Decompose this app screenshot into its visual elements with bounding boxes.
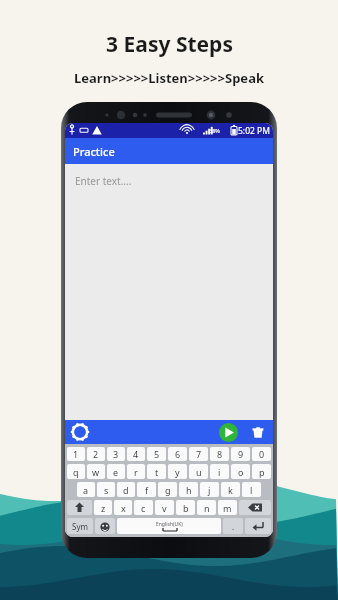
staticText: h <box>186 484 192 496</box>
button[interactable]: 7 <box>189 447 208 461</box>
staticText: 4 <box>133 448 139 460</box>
staticText: n <box>204 502 210 514</box>
staticText: a <box>83 484 89 496</box>
button[interactable]: l <box>242 482 261 497</box>
staticText: v <box>162 502 167 514</box>
staticText: g <box>165 484 171 496</box>
staticText: English(UK) <box>156 521 183 528</box>
button[interactable]: f <box>137 482 156 497</box>
button[interactable]: 5 <box>147 447 166 461</box>
button[interactable]: v <box>155 500 174 515</box>
button[interactable]: e <box>107 464 125 479</box>
button[interactable]: i <box>210 464 229 479</box>
staticText: o <box>238 466 244 478</box>
staticText: w <box>92 466 100 478</box>
staticText: 2 <box>93 448 99 460</box>
button[interactable]: 8 <box>210 447 229 461</box>
staticText: Learn>>>>>Listen>>>>>Speak <box>74 69 264 87</box>
button[interactable]: 1 <box>67 447 85 461</box>
staticText: 3 <box>113 448 119 460</box>
button[interactable]: 9 <box>231 447 250 461</box>
staticText: i <box>218 466 221 478</box>
staticText: 5:02 PM <box>238 125 270 137</box>
staticText: 6 <box>175 448 181 460</box>
staticText: t <box>155 466 159 478</box>
button[interactable] <box>95 518 115 534</box>
button[interactable]: j <box>200 482 219 497</box>
button[interactable]: x <box>114 500 132 515</box>
button[interactable]: b <box>176 500 195 515</box>
staticText: x <box>121 502 126 514</box>
staticText: 7 <box>196 448 202 460</box>
button[interactable]: Settings <box>70 422 90 442</box>
button[interactable]: r <box>127 464 145 479</box>
other: Backspace <box>239 500 271 515</box>
button[interactable]: Play <box>219 423 238 442</box>
staticText: 3 Easy Steps <box>106 30 233 59</box>
button[interactable]: a <box>77 482 95 497</box>
button[interactable]: d <box>117 482 135 497</box>
other: Shift <box>67 500 92 515</box>
button[interactable]: t <box>147 464 166 479</box>
button[interactable]: n <box>197 500 216 515</box>
button[interactable]: m <box>218 500 237 515</box>
button[interactable]: g <box>158 482 177 497</box>
button[interactable]: q <box>67 464 85 479</box>
staticText: Enter text.... <box>75 174 132 188</box>
button[interactable]: k <box>221 482 240 497</box>
button[interactable]: Enter <box>245 518 271 534</box>
button[interactable]: w <box>87 464 105 479</box>
other: Enter <box>245 518 271 534</box>
button[interactable]: Backspace <box>239 500 271 515</box>
staticText: u <box>196 466 202 478</box>
button[interactable]: Delete <box>249 424 267 442</box>
staticText: c <box>141 502 146 514</box>
staticText: p <box>259 466 265 478</box>
button[interactable]: Sym <box>67 518 93 534</box>
button[interactable]: h <box>179 482 198 497</box>
button[interactable]: Practice <box>65 138 273 164</box>
button[interactable]: 2 <box>87 447 105 461</box>
staticText: Practice <box>73 144 115 159</box>
button[interactable]: u <box>189 464 208 479</box>
staticText: m <box>223 502 232 514</box>
button[interactable]: . <box>223 518 243 534</box>
button[interactable]: z <box>94 500 112 515</box>
staticText: y <box>175 466 180 478</box>
staticText: r <box>134 466 138 478</box>
staticText: 8 <box>217 448 223 460</box>
staticText: z <box>101 502 106 514</box>
button[interactable]: English(UK) <box>117 518 221 534</box>
button[interactable]: 6 <box>168 447 187 461</box>
staticText: 68% <box>209 127 220 134</box>
staticText: k <box>228 484 233 496</box>
staticText: l <box>250 484 253 496</box>
staticText: . <box>232 521 235 532</box>
button[interactable]: o <box>231 464 250 479</box>
staticText: e <box>113 466 119 478</box>
staticText: s <box>104 484 109 496</box>
button[interactable]: c <box>134 500 153 515</box>
staticText: f <box>145 484 149 496</box>
button[interactable]: Shift <box>67 500 92 515</box>
staticText: b <box>183 502 189 514</box>
button[interactable]: 3 <box>107 447 125 461</box>
staticText: 0 <box>259 448 265 460</box>
staticText: 5 <box>154 448 160 460</box>
button[interactable]: s <box>97 482 115 497</box>
staticText: j <box>208 484 211 496</box>
button[interactable]: 0 <box>252 447 271 461</box>
button[interactable]: y <box>168 464 187 479</box>
staticText: Sym <box>72 521 88 532</box>
staticText: 9 <box>238 448 244 460</box>
button[interactable]: p <box>252 464 271 479</box>
staticText: 1 <box>73 448 79 460</box>
staticText: q <box>73 466 79 478</box>
button[interactable]: 4 <box>127 447 145 461</box>
staticText: d <box>123 484 129 496</box>
